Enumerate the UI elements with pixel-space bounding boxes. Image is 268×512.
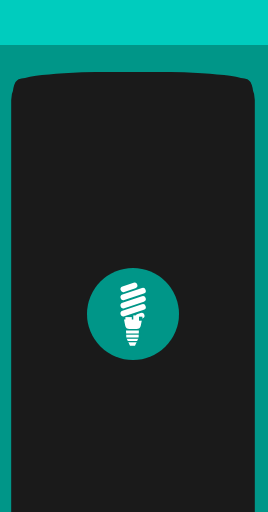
- button[interactable]: Toggle light: [87, 268, 179, 360]
